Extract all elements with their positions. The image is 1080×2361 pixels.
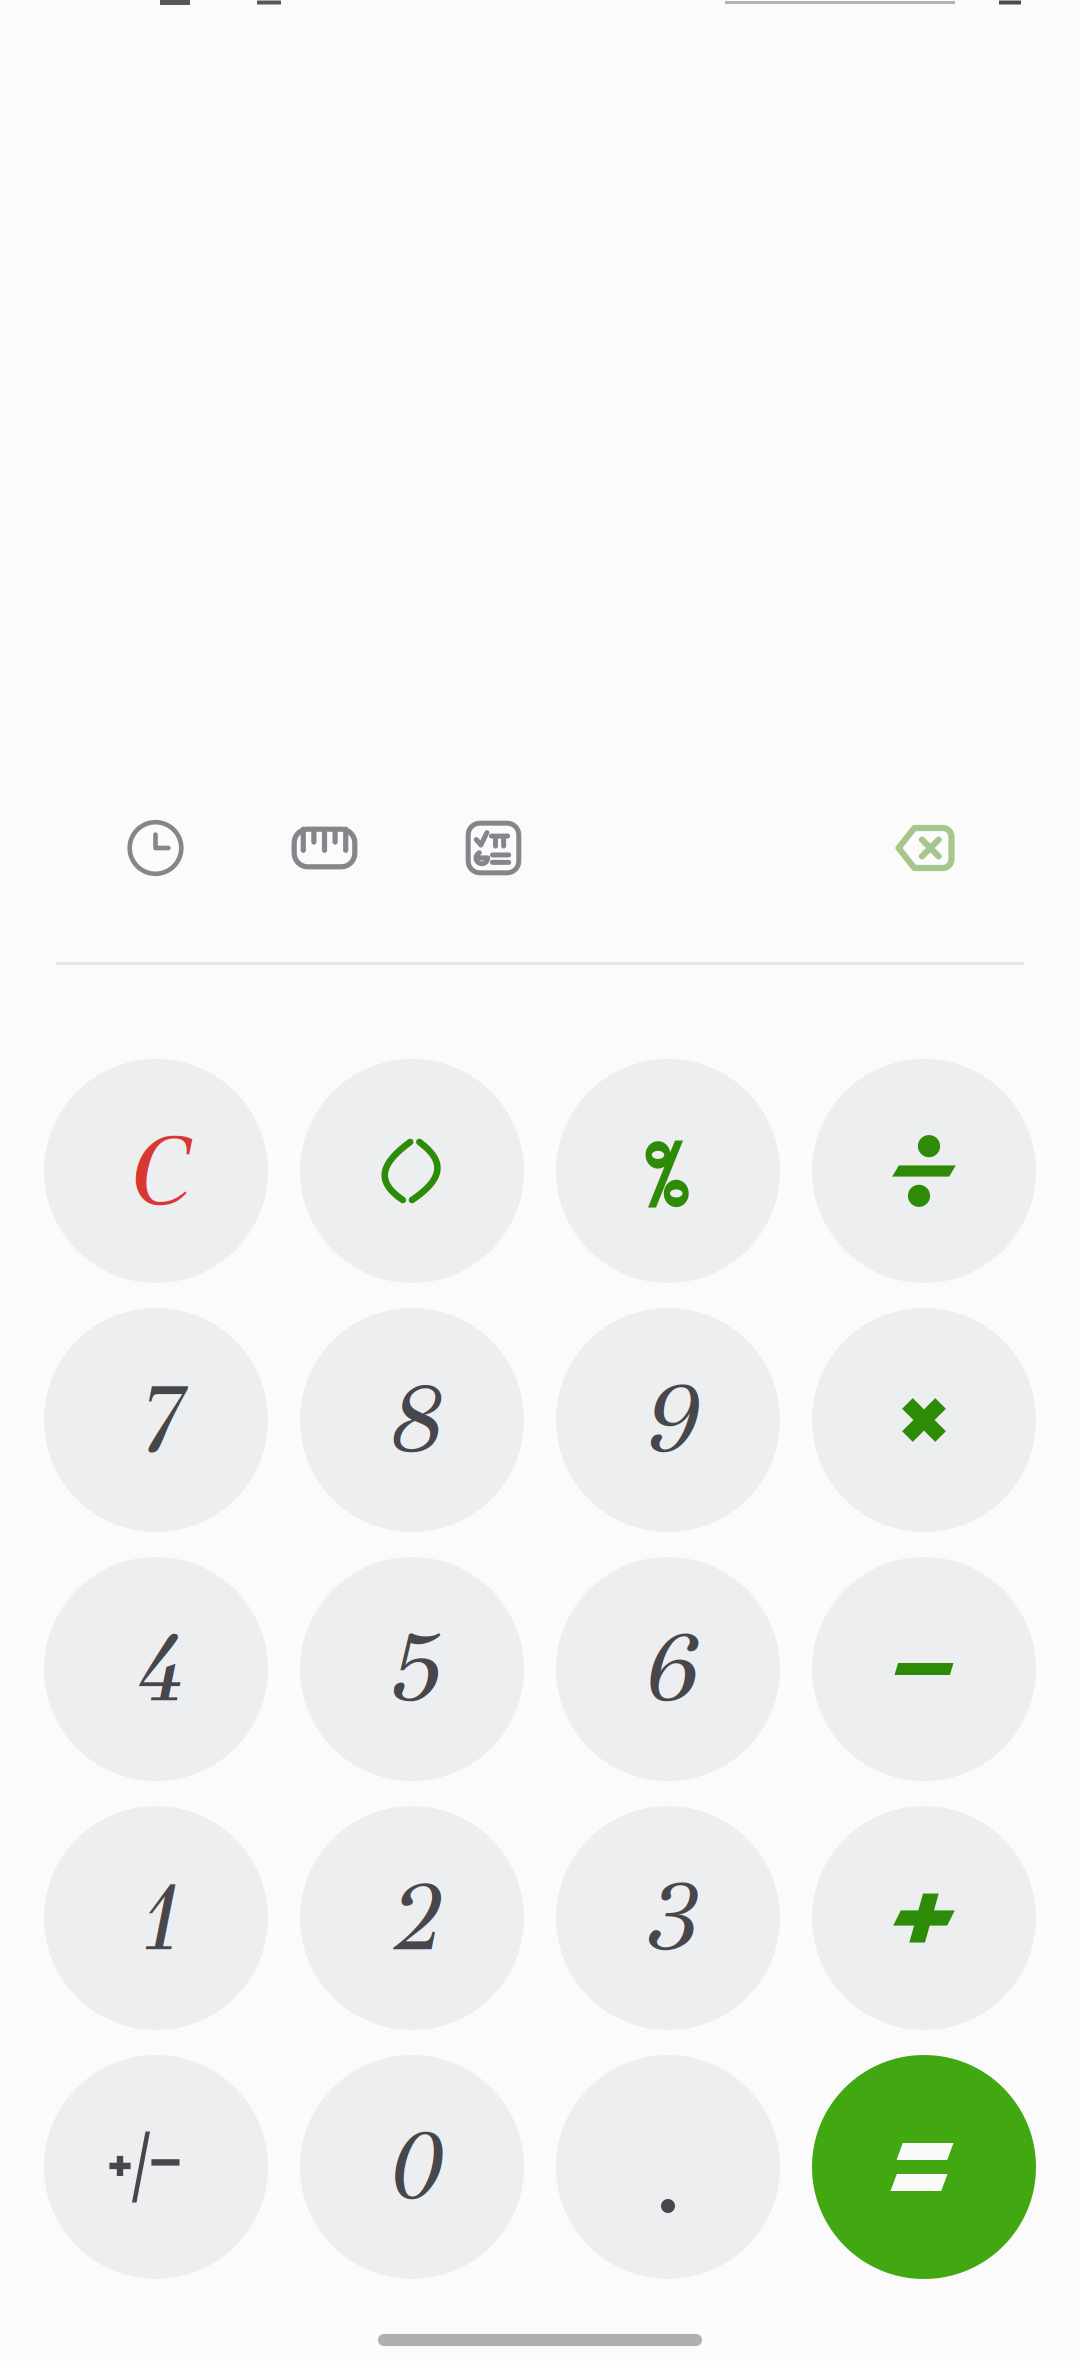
button[interactable]: Toggle sign (44, 2055, 268, 2279)
button[interactable]: Clear (44, 1059, 268, 1283)
staticText: 8 (385, 1363, 438, 1477)
button[interactable]: 0 (300, 2055, 524, 2279)
staticText: C (127, 1112, 185, 1230)
button[interactable]: Scientific functions (409, 792, 578, 904)
staticText: 2 (385, 1861, 438, 1975)
staticText: 1 (133, 1861, 178, 1975)
staticText: 4 (130, 1612, 181, 1726)
staticText: 0 (385, 2110, 438, 2224)
button[interactable]: Delete (869, 792, 981, 904)
button[interactable]: Parentheses (300, 1059, 524, 1283)
button[interactable]: Plus (812, 1806, 1036, 2030)
button[interactable]: 6 (556, 1557, 780, 1781)
button[interactable]: Multiply (812, 1308, 1036, 1532)
button[interactable]: 9 (556, 1308, 780, 1532)
button[interactable]: Divide (812, 1059, 1036, 1283)
staticText: 7 (134, 1363, 178, 1477)
button[interactable]: Decimal point (556, 2055, 780, 2279)
button[interactable]: 8 (300, 1308, 524, 1532)
button[interactable]: 2 (300, 1806, 524, 2030)
staticText: 6 (640, 1612, 695, 1726)
staticText: 5 (385, 1612, 438, 1726)
staticText: 9 (641, 1363, 694, 1477)
button[interactable]: Unit converter (240, 792, 409, 904)
button[interactable]: History (71, 792, 240, 904)
staticText: 3 (641, 1861, 694, 1975)
button[interactable]: 4 (44, 1557, 268, 1781)
button[interactable]: Equals (812, 2055, 1036, 2279)
button[interactable]: Minus (812, 1557, 1036, 1781)
button[interactable]: 5 (300, 1557, 524, 1781)
button[interactable]: 1 (44, 1806, 268, 2030)
button[interactable]: 7 (44, 1308, 268, 1532)
button[interactable]: 3 (556, 1806, 780, 2030)
button[interactable]: Percent (556, 1059, 780, 1283)
